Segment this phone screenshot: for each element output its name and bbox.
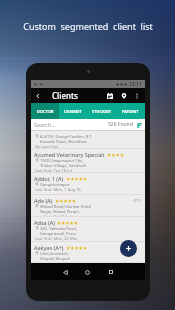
staticText: 349, Tadiwala Road, Gangaravadi, Pune <box>40 226 78 236</box>
button[interactable]: CHEMIST <box>59 103 87 119</box>
staticText: Acumed Veterinary Speciali <box>34 151 105 158</box>
staticText: 19/20,Swapnapuri Chs, Thakur Village, Ka… <box>40 158 86 168</box>
staticText: 526 Found <box>108 121 133 128</box>
button[interactable]: Back <box>31 88 45 103</box>
staticText: Chhi,Gondekiti, Khopoli,Khopoli <box>40 251 70 261</box>
staticText: PATIENT <box>122 109 139 114</box>
staticText: DOCTOR <box>37 109 54 114</box>
button[interactable]: Calendar <box>104 90 116 102</box>
button[interactable]: Filter <box>135 121 143 129</box>
button[interactable]: Ade (A) <box>31 195 145 217</box>
button[interactable]: Acumed Veterinary Speciali <box>31 149 145 173</box>
button[interactable]: PATIENT <box>116 103 145 119</box>
button[interactable]: Add client <box>120 240 137 257</box>
staticText: Addoc 1 (A) <box>34 175 64 182</box>
staticText: Last Visit: Mon, 1 Aug 16 <box>35 187 81 192</box>
staticText: 12:11 <box>129 81 142 88</box>
button[interactable]: Recents <box>102 265 120 279</box>
staticText: Last Visit: Tue,18 Jul <box>35 168 72 172</box>
button[interactable]: Addoc 1 (A) <box>31 173 145 195</box>
staticText: No Last Visit <box>35 144 59 148</box>
staticText: 4512 <box>133 198 142 203</box>
button[interactable]: Location <box>118 90 130 102</box>
button[interactable]: Home <box>78 265 96 279</box>
staticText: Gangotuchapur <box>40 182 70 187</box>
button[interactable]: DOCTOR <box>31 103 59 119</box>
staticText: Aakyas (A+) <box>34 244 64 251</box>
staticText: Clients <box>52 90 78 101</box>
staticText: Adsa (A) <box>34 219 55 226</box>
button[interactable]: Back <box>56 265 74 279</box>
staticText: Ade (A) <box>34 197 53 204</box>
button[interactable]: A-4/10f, Ganga Pavilion, B.T. Kasrade Ro… <box>31 131 145 149</box>
staticText: STOCKIST <box>92 109 112 114</box>
staticText: Last Visit: Fri, 21 Jul <box>35 214 71 216</box>
staticText: CHEMIST <box>64 109 82 114</box>
staticText: Wakad Road,Shankar Kolsé Nagar, Nabad,Pi… <box>40 204 92 214</box>
button[interactable]: More options <box>131 90 143 102</box>
button[interactable]: Adsa (A) <box>31 217 145 242</box>
staticText: A-4/10f, Ganga Pavilion, B.T. Kasrade Ro… <box>40 134 93 144</box>
staticText: Custom segmented client list <box>23 20 153 32</box>
button[interactable]: Aakyas (A+) <box>31 242 145 263</box>
staticText: Last Visit: Mon, 20 Mar <box>35 236 78 241</box>
staticText: Search... <box>34 121 56 128</box>
button[interactable]: STOCKIST <box>87 103 116 119</box>
